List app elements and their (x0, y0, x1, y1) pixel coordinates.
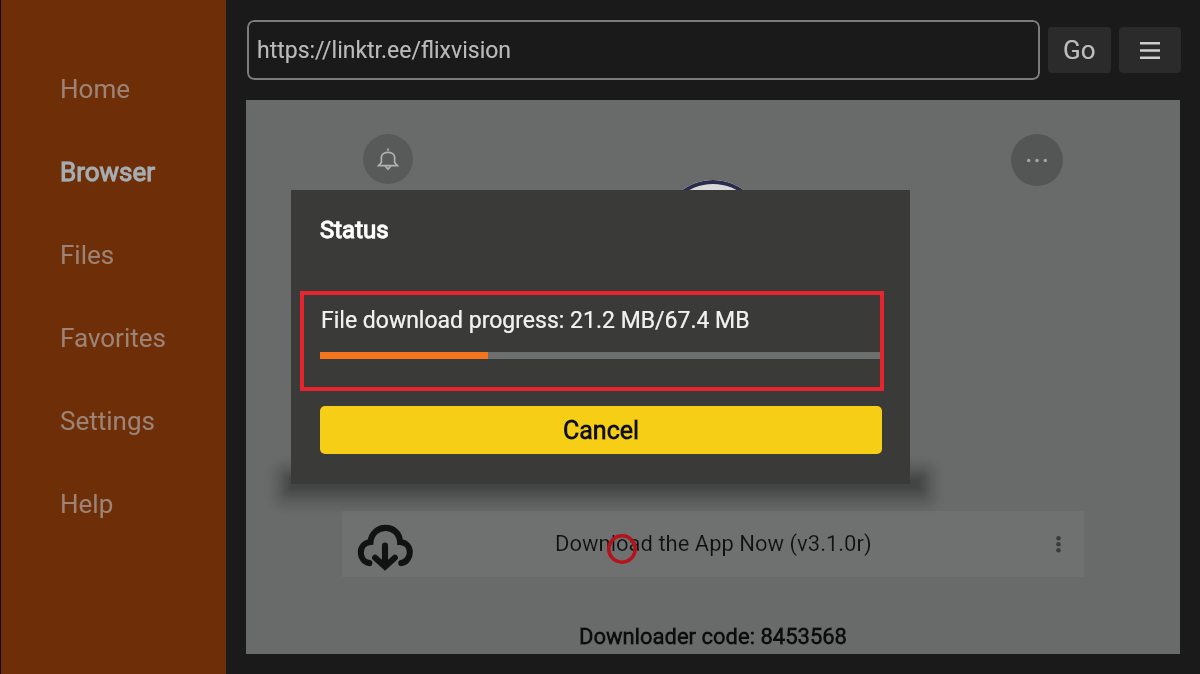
button[interactable]: Cancel (320, 406, 882, 454)
button[interactable]: Menu (1119, 27, 1181, 73)
button[interactable]: Favorites (0, 310, 226, 366)
staticText: File download progress: 21.2 MB/67.4 MB (321, 307, 750, 334)
staticText: Help (60, 489, 114, 519)
button[interactable]: Download the App Now (v3.1.0r) (342, 511, 1084, 577)
staticText: Favorites (60, 323, 166, 353)
staticText: Files (60, 240, 115, 270)
staticText: Home (60, 74, 130, 104)
staticText: https://linktr.ee/flixvision (257, 37, 512, 64)
staticText: Cancel (563, 416, 640, 445)
button[interactable]: Settings (0, 393, 226, 449)
button[interactable]: More options (1011, 134, 1063, 186)
staticText: Download the App Now (v3.1.0r) (555, 531, 872, 557)
staticText: Downloader code: 8453568 (579, 624, 847, 650)
staticText: Go (1063, 35, 1096, 65)
button[interactable]: Browser (0, 144, 226, 200)
button[interactable]: Files (0, 227, 226, 283)
staticText: Settings (60, 406, 155, 436)
button[interactable]: Help (0, 476, 226, 532)
button[interactable]: https://linktr.ee/flixvision (247, 20, 1040, 80)
button[interactable]: Home (0, 61, 226, 117)
staticText: Status (320, 216, 389, 244)
button[interactable]: Go (1048, 27, 1111, 73)
button[interactable]: Notifications (363, 134, 413, 184)
staticText: Browser (60, 157, 156, 187)
button[interactable]: More (1037, 511, 1079, 577)
